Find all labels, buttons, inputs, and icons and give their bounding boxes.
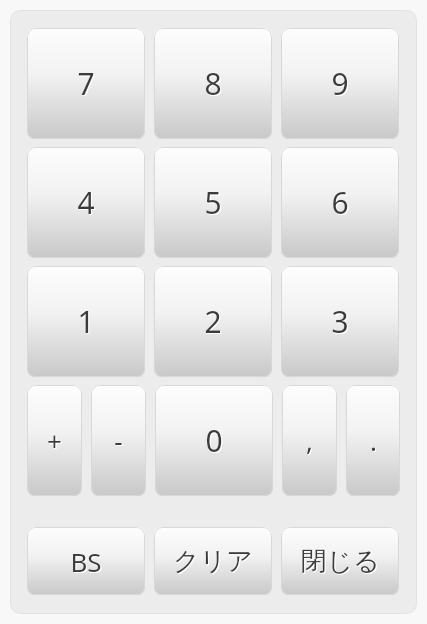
staticText: . <box>370 423 377 458</box>
button[interactable]: 0 <box>155 385 273 496</box>
button[interactable]: 4 <box>27 147 145 258</box>
staticText: 閉じる <box>300 545 380 578</box>
button[interactable]: 7 <box>27 28 145 139</box>
staticText: 0 <box>206 421 224 462</box>
staticText: 6 <box>331 182 349 223</box>
button[interactable]: 6 <box>281 147 399 258</box>
staticText: クリア <box>174 546 254 579</box>
staticText: 1 <box>77 301 95 342</box>
staticText: 5 <box>205 183 223 224</box>
staticText: + <box>47 423 62 458</box>
staticText: - <box>114 423 123 458</box>
button[interactable]: 5 <box>154 147 272 258</box>
button[interactable]: クリア <box>154 527 272 595</box>
staticText: 3 <box>331 301 349 342</box>
button[interactable]: - <box>91 385 146 496</box>
staticText: 1 <box>78 302 96 343</box>
staticText: 3 <box>332 302 350 343</box>
staticText: 9 <box>332 64 350 105</box>
staticText: 7 <box>77 63 95 104</box>
button[interactable]: 8 <box>154 28 272 139</box>
staticText: 9 <box>331 63 349 104</box>
button[interactable]: . <box>346 385 400 496</box>
staticText: 0 <box>205 420 223 461</box>
staticText: , <box>307 424 314 459</box>
staticText: BS <box>71 545 103 580</box>
button[interactable]: 閉じる <box>281 527 399 595</box>
staticText: 閉じる <box>301 546 381 579</box>
staticText: 4 <box>77 182 95 223</box>
staticText: 8 <box>204 63 222 104</box>
staticText: 6 <box>332 183 350 224</box>
button[interactable]: 9 <box>281 28 399 139</box>
staticText: 4 <box>78 183 96 224</box>
button[interactable]: , <box>282 385 337 496</box>
button[interactable]: 3 <box>281 266 399 377</box>
staticText: 2 <box>204 301 222 342</box>
button[interactable]: BS <box>27 527 145 595</box>
staticText: + <box>48 424 63 459</box>
staticText: 8 <box>205 64 223 105</box>
button[interactable]: 2 <box>154 266 272 377</box>
staticText: - <box>115 424 124 459</box>
staticText: 2 <box>205 302 223 343</box>
staticText: クリア <box>173 545 253 578</box>
staticText: 7 <box>78 64 96 105</box>
button[interactable]: 1 <box>27 266 145 377</box>
staticText: . <box>371 424 378 459</box>
staticText: 5 <box>204 182 222 223</box>
staticText: , <box>306 423 313 458</box>
button[interactable]: + <box>27 385 82 496</box>
staticText: BS <box>70 544 102 579</box>
